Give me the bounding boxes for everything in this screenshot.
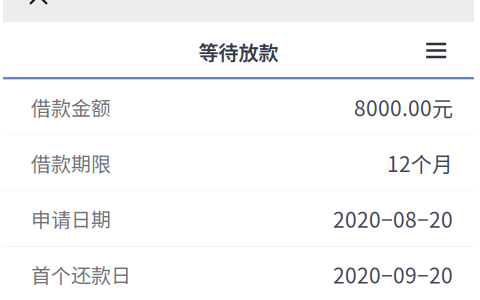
button[interactable]: Close <box>29 0 48 5</box>
staticText: 申请日期 <box>31 204 111 233</box>
staticText: 8000.00元 <box>354 92 453 122</box>
button[interactable]: 首个还款日 <box>3 247 474 300</box>
staticText: 等待放款 <box>198 37 278 66</box>
staticText: 借款金额 <box>31 92 111 121</box>
staticText: 借款期限 <box>31 148 111 177</box>
button[interactable]: Menu <box>416 33 456 67</box>
staticText: 2020−09−20 <box>333 259 453 289</box>
staticText: 首个还款日 <box>31 260 131 289</box>
staticText: 12个月 <box>387 148 453 178</box>
staticText: 2020−08−20 <box>333 203 453 234</box>
button[interactable]: 借款期限 <box>3 135 474 190</box>
button[interactable]: 申请日期 <box>3 191 474 246</box>
button[interactable]: 借款金额 <box>3 80 474 134</box>
